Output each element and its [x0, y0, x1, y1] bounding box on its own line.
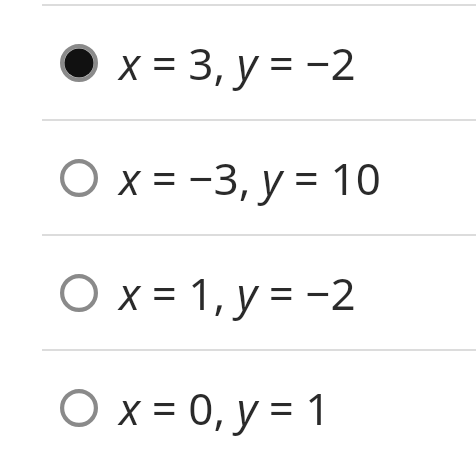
button[interactable]: Option [0, 121, 476, 234]
staticText: x = 1, y = −2 [119, 263, 356, 323]
button[interactable]: Selected option [0, 6, 476, 119]
staticText: x = −3, y = 10 [119, 148, 381, 208]
other: Option [60, 274, 98, 312]
button[interactable]: Option [0, 236, 476, 349]
other: Selected option [60, 44, 98, 82]
other: Option [60, 389, 98, 427]
button[interactable]: Option [0, 351, 476, 464]
staticText: x = 0, y = 1 [119, 378, 331, 438]
staticText: x = 3, y = −2 [119, 33, 356, 93]
other: Option [60, 159, 98, 197]
